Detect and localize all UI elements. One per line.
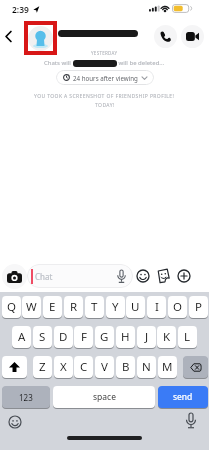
button[interactable] <box>136 269 150 283</box>
button[interactable]: Z <box>33 356 52 378</box>
staticText: 2:39 <box>12 4 29 16</box>
button[interactable]: J <box>137 326 156 348</box>
staticText: A <box>18 329 26 345</box>
staticText: T <box>91 299 98 315</box>
button[interactable]: B <box>116 356 135 378</box>
button[interactable]: Y <box>106 296 125 318</box>
staticText: H <box>121 329 130 345</box>
button[interactable]: M <box>158 356 177 378</box>
staticText: will be deleted... <box>117 59 165 67</box>
button[interactable]: N <box>137 356 156 378</box>
button[interactable]: K <box>157 326 176 348</box>
staticText: space <box>93 391 116 403</box>
button[interactable] <box>28 26 53 51</box>
staticText: F <box>81 329 87 345</box>
staticText: X <box>60 359 67 375</box>
staticText: K <box>163 329 171 345</box>
button[interactable]: T <box>85 296 104 318</box>
button[interactable]: S <box>33 326 52 348</box>
button[interactable]: G <box>95 326 114 348</box>
staticText: G <box>100 329 109 345</box>
button[interactable]: I <box>147 296 166 318</box>
button[interactable] <box>2 356 27 378</box>
button[interactable] <box>177 269 191 283</box>
staticText: S <box>39 329 46 345</box>
staticText: L <box>184 329 191 345</box>
staticText: I <box>155 299 159 315</box>
staticText: C <box>80 359 88 375</box>
button[interactable] <box>181 25 204 48</box>
staticText: Chats will <box>44 59 73 67</box>
staticText: B <box>122 359 130 375</box>
button[interactable]: A <box>12 326 31 348</box>
staticText: P <box>195 299 202 315</box>
staticText: send <box>173 391 193 403</box>
button[interactable]: E <box>43 296 62 318</box>
staticText: J <box>145 329 149 345</box>
staticText: U <box>131 299 140 315</box>
button[interactable] <box>154 25 177 48</box>
button[interactable]: V <box>95 356 114 378</box>
button[interactable] <box>183 356 208 378</box>
button[interactable] <box>186 413 196 429</box>
button[interactable]: O <box>168 296 187 318</box>
staticText: R <box>70 299 78 315</box>
staticText: 24 hours after viewing <box>73 74 138 82</box>
button[interactable]: 123 <box>2 386 50 408</box>
button[interactable]: space <box>53 386 155 408</box>
staticText: M <box>162 359 173 375</box>
staticText: YESTERDAY <box>91 50 118 56</box>
staticText: O <box>173 299 182 315</box>
staticText: N <box>142 359 151 375</box>
staticText: V <box>101 359 108 375</box>
staticText: Q <box>7 299 16 315</box>
staticText: Chat <box>35 271 53 282</box>
button[interactable]: F <box>74 326 93 348</box>
button[interactable] <box>5 31 12 42</box>
button[interactable]: Q <box>2 296 21 318</box>
staticText: E <box>49 299 56 315</box>
staticText: YOU TOOK A SCREENSHOT OF FRIENDSHIP PROF… <box>34 93 175 100</box>
staticText: TODAY! <box>95 102 115 109</box>
staticText: 123 <box>19 392 33 403</box>
button[interactable]: W <box>22 296 41 318</box>
button[interactable] <box>2 264 27 289</box>
button[interactable]: R <box>64 296 83 318</box>
button[interactable]: P <box>189 296 208 318</box>
button[interactable]: send <box>158 386 208 408</box>
button[interactable]: L <box>178 326 197 348</box>
button[interactable]: U <box>126 296 145 318</box>
staticText: Y <box>112 299 119 315</box>
button[interactable]: Chat <box>27 264 133 288</box>
button[interactable]: X <box>54 356 73 378</box>
button[interactable] <box>156 268 171 283</box>
button[interactable]: D <box>54 326 73 348</box>
button[interactable]: H <box>116 326 135 348</box>
button[interactable] <box>8 415 22 429</box>
staticText: W <box>26 299 37 315</box>
staticText: Z <box>39 359 46 375</box>
button[interactable]: 24 hours after viewing <box>56 70 154 85</box>
button[interactable]: C <box>74 356 93 378</box>
staticText: D <box>59 329 68 345</box>
